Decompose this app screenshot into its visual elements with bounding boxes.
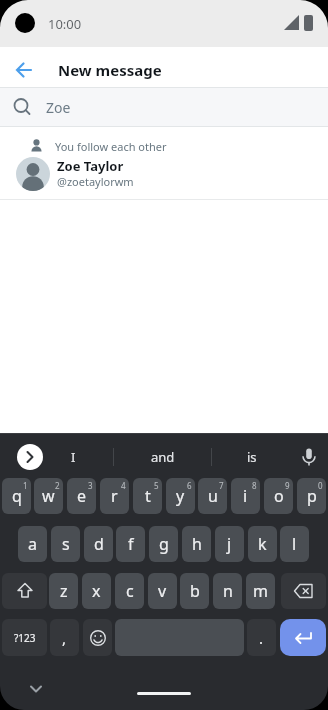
staticText: w	[42, 485, 55, 507]
staticText: s	[62, 533, 70, 555]
staticText: Zoe	[46, 98, 71, 117]
staticText: k	[258, 533, 267, 555]
staticText: d	[94, 533, 104, 555]
staticText: b	[190, 580, 200, 602]
button[interactable]: You follow each other	[0, 127, 328, 200]
staticText: 10:00	[48, 15, 82, 33]
staticText: You follow each other	[55, 139, 167, 154]
staticText: y	[176, 485, 185, 507]
staticText: v	[158, 580, 167, 602]
staticText: 2	[55, 480, 60, 491]
button[interactable]: a	[18, 526, 47, 562]
staticText: n	[223, 580, 233, 602]
staticText: h	[192, 533, 202, 555]
button[interactable]: u	[198, 478, 227, 514]
button[interactable]: .	[247, 619, 276, 656]
staticText: l	[292, 533, 297, 555]
staticText: and	[151, 448, 175, 466]
staticText: o	[274, 485, 284, 507]
button[interactable]: I	[40, 437, 106, 477]
staticText: e	[77, 485, 87, 507]
button[interactable]: m	[246, 573, 275, 609]
button[interactable]	[2, 573, 47, 609]
button[interactable]: q	[2, 478, 31, 514]
button[interactable]: d	[84, 526, 113, 562]
button[interactable]	[281, 573, 326, 609]
staticText: j	[227, 533, 232, 555]
button[interactable]: ,	[50, 619, 79, 656]
staticText: r	[111, 485, 118, 507]
staticText: 4	[121, 480, 126, 491]
staticText: i	[243, 485, 248, 507]
staticText: t	[145, 485, 151, 507]
button[interactable]: and	[114, 437, 211, 477]
button[interactable]: p	[297, 478, 326, 514]
button[interactable]: Zoe	[0, 88, 328, 126]
button[interactable]: z	[49, 573, 78, 609]
staticText: a	[28, 533, 37, 555]
button[interactable]: t	[133, 478, 162, 514]
staticText: 9	[285, 480, 290, 491]
button[interactable]	[280, 619, 326, 656]
button[interactable]: e	[67, 478, 96, 514]
button[interactable]	[17, 444, 43, 470]
button[interactable]: b	[180, 573, 209, 609]
staticText: q	[12, 485, 22, 507]
button[interactable]: s	[51, 526, 80, 562]
staticText: ,	[62, 628, 67, 648]
staticText: u	[208, 485, 218, 507]
button[interactable]: y	[166, 478, 195, 514]
button[interactable]: h	[182, 526, 211, 562]
staticText: 6	[187, 480, 192, 491]
staticText: is	[247, 448, 257, 466]
staticText: ?123	[14, 631, 36, 645]
staticText: m	[253, 580, 268, 602]
button[interactable]: k	[248, 526, 277, 562]
staticText: New message	[58, 60, 162, 80]
staticText: c	[126, 580, 134, 602]
staticText: 7	[219, 480, 224, 491]
staticText: @zoetaylorwm	[57, 174, 134, 189]
staticText: 3	[88, 480, 93, 491]
button[interactable]: c	[115, 573, 144, 609]
staticText: x	[92, 580, 101, 602]
staticText: z	[60, 580, 68, 602]
button[interactable]: v	[148, 573, 177, 609]
button[interactable]: r	[100, 478, 129, 514]
staticText: 8	[252, 480, 257, 491]
button[interactable]: n	[213, 573, 242, 609]
staticText: 5	[154, 480, 159, 491]
button[interactable]: g	[149, 526, 178, 562]
button[interactable]: i	[231, 478, 260, 514]
button[interactable]	[296, 444, 322, 470]
button[interactable]: j	[215, 526, 244, 562]
button[interactable]: ?123	[2, 619, 47, 656]
staticText: I	[71, 448, 76, 466]
button[interactable]: is	[212, 437, 292, 477]
staticText: 1	[23, 480, 28, 491]
button[interactable]: x	[82, 573, 111, 609]
staticText: Zoe Taylor	[57, 157, 124, 175]
button[interactable]: w	[34, 478, 63, 514]
staticText: 0	[318, 480, 323, 491]
button[interactable]: f	[116, 526, 145, 562]
button[interactable]: o	[264, 478, 293, 514]
staticText: f	[128, 533, 134, 555]
staticText: .	[259, 628, 264, 648]
button[interactable]	[83, 619, 112, 656]
button[interactable]	[6, 51, 38, 83]
staticText: g	[159, 533, 169, 555]
button[interactable]	[24, 682, 48, 696]
staticText: p	[307, 485, 317, 507]
button[interactable]: l	[280, 526, 309, 562]
